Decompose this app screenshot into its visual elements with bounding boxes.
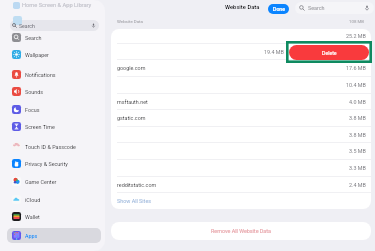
other: Voice search bbox=[91, 23, 96, 28]
staticText: Website Data bbox=[225, 4, 260, 11]
button[interactable]: Show All Sites bbox=[111, 192, 371, 209]
staticText: 10.4 MB bbox=[346, 82, 366, 88]
staticText: Game Center bbox=[25, 179, 57, 185]
button[interactable]: Search bbox=[295, 2, 374, 14]
button[interactable] bbox=[111, 43, 371, 60]
button[interactable]: Sounds bbox=[7, 84, 101, 99]
staticText: gstatic.com bbox=[117, 115, 146, 121]
staticText: Search bbox=[25, 35, 42, 41]
other: Voice search bbox=[364, 5, 370, 11]
button[interactable]: google.com bbox=[111, 59, 371, 76]
staticText: Apps bbox=[25, 233, 38, 239]
button[interactable]: Search bbox=[7, 30, 101, 45]
staticText: Sounds bbox=[25, 89, 44, 95]
staticText: Screen Time bbox=[25, 124, 55, 130]
staticText: Home Screen & App Library bbox=[22, 2, 92, 9]
staticText: 2.4 MB bbox=[349, 182, 366, 188]
staticText: Wallpaper bbox=[25, 52, 49, 58]
button[interactable]: 3.3 MB bbox=[111, 159, 371, 176]
button[interactable]: Done bbox=[268, 4, 289, 14]
staticText: Wallet bbox=[25, 214, 40, 220]
staticText: Search bbox=[308, 5, 325, 11]
button[interactable]: Search bbox=[10, 20, 99, 31]
button[interactable]: Screen Time bbox=[7, 119, 101, 134]
staticText: 108 MB bbox=[349, 19, 365, 24]
button[interactable]: gstatic.com bbox=[111, 109, 371, 126]
button[interactable]: redditstatic.com bbox=[111, 176, 371, 193]
staticText: Focus bbox=[25, 107, 40, 113]
button[interactable]: Touch ID & Passcode bbox=[7, 139, 101, 154]
button[interactable]: Notifications bbox=[7, 67, 101, 82]
button[interactable]: msftauth.net bbox=[111, 93, 371, 110]
button[interactable]: iCloud bbox=[7, 192, 101, 207]
button[interactable]: 25.2 MB bbox=[111, 29, 371, 43]
staticText: 17.6 MB bbox=[346, 65, 366, 71]
button[interactable]: Privacy & Security bbox=[7, 156, 101, 171]
staticText: Website Data bbox=[117, 19, 143, 24]
button[interactable]: Apps bbox=[7, 228, 101, 243]
staticText: Done bbox=[273, 6, 285, 12]
staticText: redditstatic.com bbox=[117, 182, 157, 188]
staticText: 25.2 MB bbox=[346, 33, 366, 39]
staticText: Show All Sites bbox=[117, 198, 152, 204]
staticText: msftauth.net bbox=[117, 99, 148, 105]
staticText: Privacy & Security bbox=[25, 161, 68, 167]
staticText: Touch ID & Passcode bbox=[25, 144, 76, 150]
staticText: Remove All Website Data bbox=[211, 228, 271, 234]
staticText: 4.0 MB bbox=[349, 99, 366, 105]
button[interactable]: Wallpaper bbox=[7, 47, 101, 62]
staticText: Notifications bbox=[25, 72, 56, 78]
staticText: 3.5 MB bbox=[349, 148, 366, 154]
button[interactable]: Game Center bbox=[7, 174, 101, 189]
staticText: 3.3 MB bbox=[349, 165, 366, 171]
button[interactable]: Focus bbox=[7, 102, 101, 117]
staticText: 3.8 MB bbox=[349, 115, 366, 121]
staticText: 3.8 MB bbox=[349, 132, 366, 138]
staticText: iCloud bbox=[25, 197, 41, 203]
staticText: Search bbox=[19, 23, 35, 29]
staticText: Delete bbox=[322, 50, 337, 56]
staticText: google.com bbox=[117, 65, 146, 71]
button[interactable]: 3.8 MB bbox=[111, 126, 371, 143]
button[interactable]: Delete bbox=[289, 45, 369, 60]
button[interactable]: Remove All Website Data bbox=[111, 222, 371, 240]
button[interactable]: 10.4 MB bbox=[111, 76, 371, 93]
button[interactable]: Wallet bbox=[7, 209, 101, 224]
button[interactable]: 3.5 MB bbox=[111, 142, 371, 159]
staticText: 19.4 MB bbox=[264, 49, 284, 55]
